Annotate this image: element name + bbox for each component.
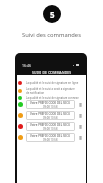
staticText: 16:46 bbox=[22, 63, 31, 68]
other: Supprimer bbox=[79, 103, 82, 107]
staticText: SUIVI DE COMMANDES bbox=[32, 70, 72, 75]
button[interactable]: La qualité et le suivi de signature en l… bbox=[17, 80, 86, 86]
staticText: Suivi des commandes bbox=[22, 31, 81, 39]
staticText: 09:08 10:58 bbox=[43, 105, 58, 109]
button[interactable]: Votre PREFIX CODE DEL SECU bbox=[17, 133, 86, 142]
other: Supprimer bbox=[79, 114, 82, 118]
button[interactable]: La qualité et le suivi a ovoit a signatu… bbox=[17, 86, 86, 95]
staticText: Votre PREFIX CODE DEL SECU bbox=[30, 101, 71, 105]
staticText: La qualité et le suivi a ovoit a signatu… bbox=[26, 87, 75, 91]
button[interactable]: 5 bbox=[43, 5, 61, 23]
staticText: La qualité et le suivi de signature conn… bbox=[26, 96, 79, 100]
staticText: 5 bbox=[50, 9, 55, 20]
other: Supprimer bbox=[79, 125, 82, 129]
other: Supprimer bbox=[79, 136, 82, 140]
staticText: Votre PREFIX CODE DEL SECU bbox=[30, 134, 71, 138]
staticText: 09:08 10:58 bbox=[43, 127, 58, 131]
staticText: de notification bbox=[26, 91, 45, 95]
button[interactable]: Votre PREFIX CODE DEL SECU bbox=[17, 122, 86, 131]
staticText: 09:08 10:58 bbox=[43, 138, 58, 142]
staticText: Votre PREFIX CODE DEL SECU bbox=[30, 123, 71, 127]
staticText: 09:08 10:58 bbox=[43, 116, 58, 120]
button[interactable]: La qualité et le suivi de signature conn… bbox=[17, 95, 86, 101]
button[interactable]: Votre PREFIX CODE DEL SECU bbox=[17, 111, 86, 120]
button[interactable]: Votre PREFIX CODE DEL SECU bbox=[17, 100, 86, 109]
staticText: Votre PREFIX CODE DEL SECU bbox=[30, 112, 71, 116]
staticText: La qualité et le suivi de signature en l… bbox=[26, 81, 79, 85]
